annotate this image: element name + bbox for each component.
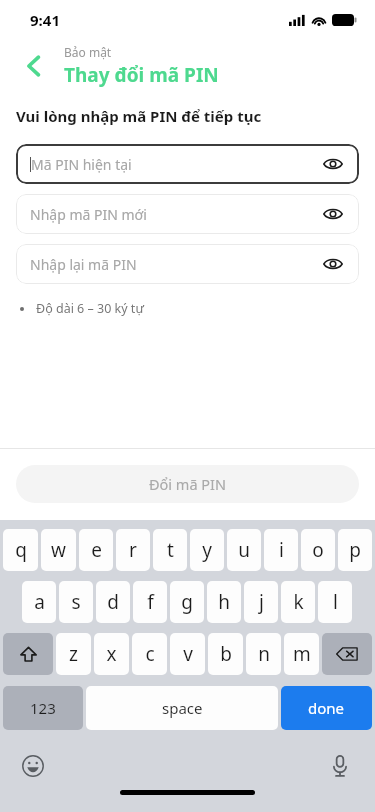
button[interactable]: Dictation: [325, 751, 355, 781]
button[interactable]: g: [170, 581, 204, 623]
staticText: h: [218, 589, 230, 615]
button[interactable]: Shift: [3, 633, 53, 675]
staticText: k: [293, 589, 304, 615]
staticText: j: [259, 589, 264, 615]
button[interactable]: d: [96, 581, 130, 623]
staticText: l: [333, 589, 338, 615]
staticText: Vui lòng nhập mã PIN để tiếp tục: [16, 106, 262, 126]
button[interactable]: m: [284, 633, 319, 675]
staticText: done: [308, 698, 345, 718]
staticText: e: [91, 537, 102, 563]
staticText: Mã PIN hiện tại: [31, 155, 132, 174]
staticText: a: [34, 589, 45, 615]
staticText: b: [220, 641, 232, 667]
staticText: Nhập mã PIN mới: [30, 205, 147, 224]
button[interactable]: Emoji: [18, 751, 48, 781]
button[interactable]: 123: [3, 686, 83, 730]
staticText: 9:41: [30, 10, 60, 30]
staticText: x: [106, 641, 117, 667]
staticText: m: [293, 641, 311, 667]
staticText: i: [279, 537, 284, 563]
button[interactable]: r: [116, 529, 150, 571]
button[interactable]: j: [244, 581, 278, 623]
staticText: p: [349, 537, 361, 563]
button[interactable]: o: [301, 529, 335, 571]
staticText: t: [167, 537, 174, 563]
staticText: y: [202, 537, 212, 563]
button[interactable]: k: [281, 581, 315, 623]
button[interactable]: p: [338, 529, 372, 571]
staticText: d: [107, 589, 119, 615]
button[interactable]: a: [22, 581, 56, 623]
button[interactable]: e: [79, 529, 113, 571]
staticText: f: [147, 589, 154, 615]
staticText: Độ dài 6 – 30 ký tự: [36, 300, 144, 317]
button[interactable]: i: [264, 529, 298, 571]
button[interactable]: l: [318, 581, 352, 623]
button[interactable]: done: [281, 686, 372, 730]
staticText: c: [145, 641, 155, 667]
staticText: w: [51, 537, 66, 563]
staticText: q: [15, 537, 27, 563]
staticText: n: [258, 641, 270, 667]
button[interactable]: Backspace: [322, 633, 372, 675]
button[interactable]: b: [208, 633, 243, 675]
button[interactable]: x: [94, 633, 129, 675]
button[interactable]: s: [59, 581, 93, 623]
staticText: z: [69, 641, 78, 667]
button[interactable]: Show PIN: [317, 148, 349, 180]
staticText: s: [71, 589, 81, 615]
staticText: r: [129, 537, 137, 563]
staticText: v: [183, 641, 193, 667]
staticText: Thay đổi mã PIN: [64, 62, 219, 88]
button[interactable]: q: [3, 529, 38, 571]
staticText: g: [181, 589, 193, 615]
button[interactable]: n: [246, 633, 281, 675]
staticText: 123: [30, 698, 56, 718]
button[interactable]: Back: [14, 46, 54, 86]
button[interactable]: u: [227, 529, 261, 571]
staticText: o: [312, 537, 324, 563]
button[interactable]: Mã PIN hiện tại: [16, 144, 359, 184]
button[interactable]: Show PIN: [317, 198, 349, 230]
button[interactable]: h: [207, 581, 241, 623]
staticText: space: [162, 698, 203, 718]
staticText: Nhập lại mã PIN: [30, 255, 137, 274]
staticText: Bảo mật: [64, 44, 112, 60]
button[interactable]: f: [133, 581, 167, 623]
button[interactable]: w: [41, 529, 76, 571]
button[interactable]: Nhập lại mã PIN: [16, 244, 359, 284]
staticText: u: [238, 537, 250, 563]
button[interactable]: y: [190, 529, 224, 571]
button[interactable]: Đổi mã PIN: [16, 465, 359, 503]
button[interactable]: Show PIN: [317, 248, 349, 280]
button[interactable]: space: [86, 686, 278, 730]
button[interactable]: z: [56, 633, 91, 675]
button[interactable]: Nhập mã PIN mới: [16, 194, 359, 234]
button[interactable]: v: [170, 633, 205, 675]
button[interactable]: c: [132, 633, 167, 675]
staticText: Đổi mã PIN: [149, 474, 227, 494]
button[interactable]: t: [153, 529, 187, 571]
